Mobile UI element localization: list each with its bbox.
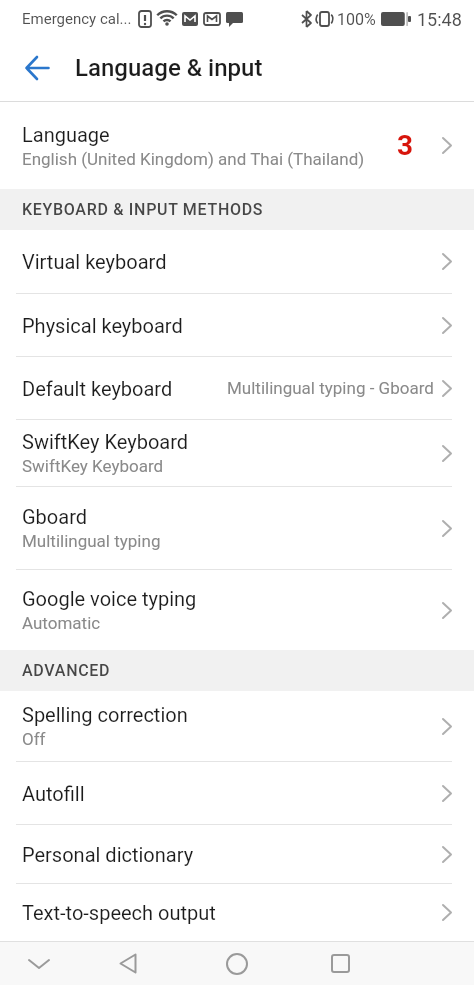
staticText: Language & input <box>75 54 263 82</box>
button[interactable] <box>17 942 61 985</box>
staticText: Emergency cal... <box>22 10 132 28</box>
staticText: SwiftKey Keyboard <box>22 430 189 453</box>
button[interactable] <box>215 942 259 985</box>
staticText: ADVANCED <box>22 661 111 680</box>
button[interactable]: Spelling correction <box>0 691 474 761</box>
staticText: Gboard <box>22 505 88 528</box>
button[interactable]: Language <box>0 102 474 189</box>
staticText: Automatic <box>22 613 101 633</box>
staticText: Google voice typing <box>22 587 197 610</box>
staticText: Physical keyboard <box>22 314 183 337</box>
button[interactable]: Autofill <box>0 762 474 824</box>
staticText: Text-to-speech output <box>22 901 216 924</box>
staticText: Default keyboard <box>22 377 173 400</box>
staticText: Multilingual typing <box>22 531 161 551</box>
button[interactable] <box>106 942 150 985</box>
staticText: 3 <box>397 129 414 162</box>
button[interactable] <box>318 942 362 985</box>
button[interactable]: Text-to-speech output <box>0 884 474 941</box>
staticText: 15:48 <box>417 9 462 30</box>
staticText: Personal dictionary <box>22 843 194 866</box>
staticText: Off <box>22 729 46 749</box>
button[interactable] <box>0 35 74 101</box>
staticText: 100% <box>337 10 376 29</box>
button[interactable]: Virtual keyboard <box>0 230 474 293</box>
staticText: KEYBOARD & INPUT METHODS <box>22 200 264 219</box>
button[interactable]: Default keyboard <box>0 357 474 419</box>
button[interactable]: Personal dictionary <box>0 825 474 883</box>
staticText: Language <box>22 123 110 146</box>
button[interactable]: SwiftKey Keyboard <box>0 420 474 486</box>
staticText: Autofill <box>22 782 85 805</box>
button[interactable]: Gboard <box>0 487 474 569</box>
staticText: Multilingual typing - Gboard <box>227 378 434 398</box>
button[interactable]: Physical keyboard <box>0 294 474 356</box>
button[interactable]: Google voice typing <box>0 570 474 650</box>
staticText: Virtual keyboard <box>22 250 167 273</box>
staticText: English (United Kingdom) and Thai (Thail… <box>22 149 365 169</box>
staticText: Spelling correction <box>22 703 188 726</box>
staticText: SwiftKey Keyboard <box>22 456 164 476</box>
